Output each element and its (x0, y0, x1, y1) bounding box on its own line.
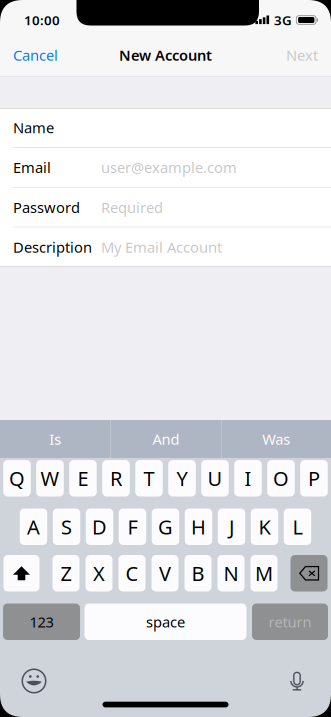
button[interactable]: Cancel (0, 33, 71, 77)
button[interactable]: Is (0, 420, 110, 458)
staticText: Z (60, 560, 71, 587)
staticText: U (207, 465, 222, 492)
staticText: 123 (29, 612, 53, 631)
button[interactable]: Q (3, 460, 31, 496)
staticText: V (159, 560, 171, 587)
button[interactable]: Dictate (280, 664, 314, 698)
staticText: Next (286, 45, 318, 65)
staticText: return (268, 612, 311, 631)
staticText: Is (49, 429, 61, 449)
staticText: R (110, 465, 122, 492)
button[interactable]: K (251, 508, 278, 545)
button[interactable]: D (86, 508, 113, 545)
button[interactable]: W (36, 460, 64, 496)
button[interactable]: Emoji (17, 664, 51, 698)
staticText: H (191, 513, 206, 540)
staticText: Password (13, 197, 80, 217)
button[interactable]: H (185, 508, 212, 545)
staticText: L (292, 513, 302, 540)
staticText: I (244, 465, 251, 492)
staticText: E (77, 465, 88, 492)
staticText: B (191, 560, 204, 587)
button[interactable]: A (20, 508, 47, 545)
staticText: C (125, 560, 138, 587)
staticText: W (40, 465, 59, 492)
button[interactable]: Next (273, 33, 331, 77)
staticText: G (158, 513, 173, 540)
button[interactable]: R (102, 460, 130, 496)
button[interactable]: return (252, 603, 328, 640)
button[interactable]: Was (222, 420, 331, 458)
staticText: My Email Account (101, 237, 222, 257)
button[interactable]: Y (168, 460, 196, 496)
button[interactable]: L (284, 508, 311, 545)
button[interactable]: C (118, 555, 145, 591)
button[interactable]: N (217, 555, 244, 591)
button[interactable]: I (234, 460, 262, 496)
staticText: Required (101, 197, 163, 217)
button[interactable]: F (119, 508, 146, 545)
button[interactable]: M (250, 555, 277, 591)
button[interactable]: Delete (290, 555, 327, 591)
staticText: Email (13, 158, 51, 177)
button[interactable]: X (85, 555, 112, 591)
button[interactable]: S (53, 508, 80, 545)
staticText: New Account (119, 45, 212, 65)
staticText: K (258, 513, 270, 540)
staticText: Name (13, 118, 54, 137)
staticText: S (61, 513, 72, 540)
staticText: 3G (274, 11, 292, 29)
staticText: Was (262, 429, 290, 449)
staticText: space (146, 612, 185, 631)
button[interactable]: 123 (3, 603, 80, 640)
staticText: A (27, 513, 40, 540)
staticText: 10:00 (24, 11, 60, 29)
staticText: Cancel (13, 45, 58, 65)
button[interactable]: O (267, 460, 295, 496)
button[interactable]: U (201, 460, 229, 496)
staticText: P (308, 465, 320, 492)
button[interactable]: Shift (3, 555, 39, 591)
button[interactable]: V (151, 555, 178, 591)
staticText: D (92, 513, 107, 540)
button[interactable]: T (135, 460, 163, 496)
button[interactable]: Z (52, 555, 79, 591)
button[interactable]: And (111, 420, 221, 458)
staticText: Y (176, 465, 187, 492)
staticText: user@example.com (101, 158, 237, 177)
button[interactable]: B (184, 555, 211, 591)
staticText: X (93, 560, 105, 587)
button[interactable]: E (69, 460, 97, 496)
staticText: Description (13, 237, 92, 257)
staticText: And (152, 429, 179, 449)
button[interactable]: P (300, 460, 328, 496)
button[interactable]: space (84, 603, 246, 640)
staticText: J (229, 513, 234, 540)
staticText: N (223, 560, 238, 587)
staticText: F (127, 513, 137, 540)
staticText: M (255, 560, 273, 587)
staticText: Q (9, 465, 25, 492)
button[interactable]: J (218, 508, 245, 545)
staticText: T (143, 465, 154, 492)
staticText: O (273, 465, 289, 492)
button[interactable]: G (152, 508, 179, 545)
